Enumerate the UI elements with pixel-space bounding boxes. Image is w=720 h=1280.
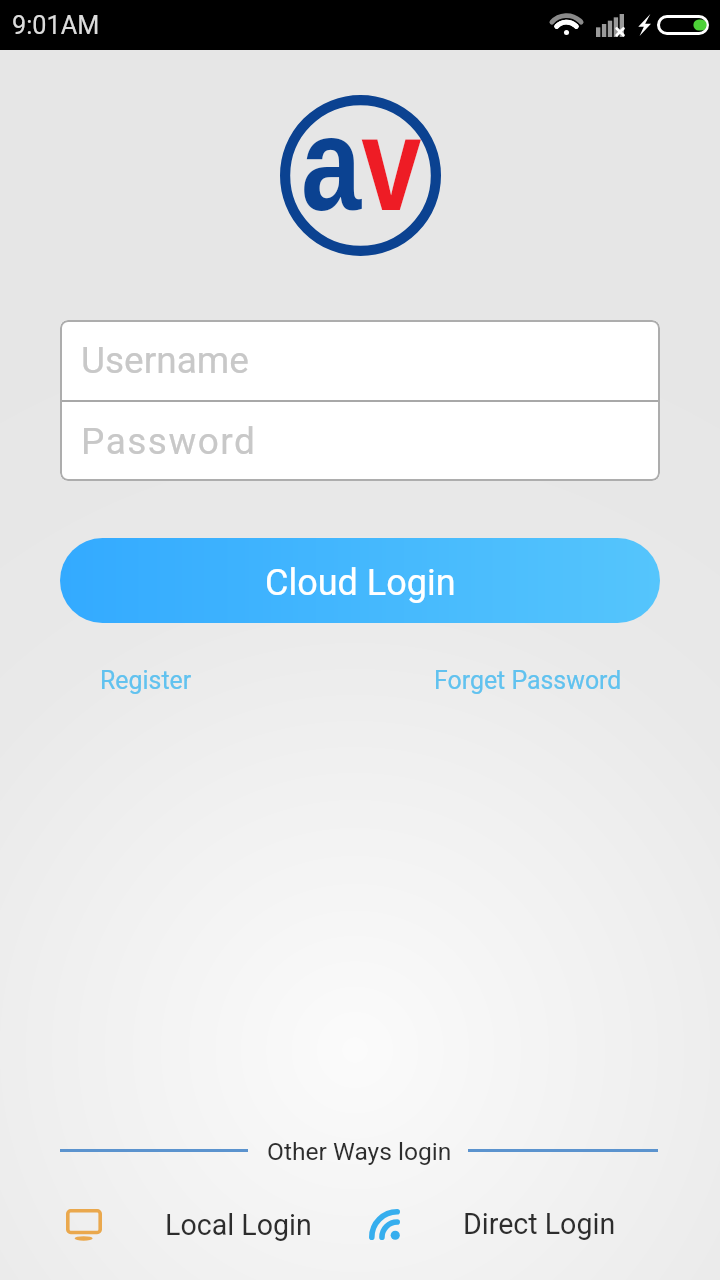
button[interactable]: Password [60,402,660,481]
staticText: 9:01AM [12,11,100,41]
button[interactable]: Cloud Login [60,538,660,623]
button[interactable]: Register [100,666,192,695]
staticText: Local Login [165,1208,312,1242]
other: Local Login [66,1209,102,1241]
staticText: Register [100,666,192,695]
button[interactable]: Forget Password [434,666,622,695]
staticText: Other Ways login [267,1137,452,1166]
staticText: Password [81,420,257,463]
staticText: Direct Login [463,1207,616,1241]
other: Direct Login [369,1209,400,1240]
staticText: Username [81,339,249,382]
staticText: v [361,90,421,239]
staticText: Cloud Login [265,562,456,604]
button[interactable]: Local Login [66,1208,312,1242]
staticText: Forget Password [434,666,622,695]
staticText: a [301,90,361,239]
button[interactable]: Direct Login [369,1207,616,1241]
button[interactable]: Username [60,320,660,400]
